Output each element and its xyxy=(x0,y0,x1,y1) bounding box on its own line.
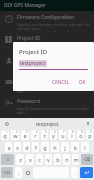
staticText: DIY GPS Manager xyxy=(4,2,46,9)
staticText: Project ID of your firmware / Telemetry … xyxy=(17,43,90,53)
staticText: g xyxy=(43,144,47,151)
button[interactable]: c xyxy=(36,154,43,165)
staticText: a xyxy=(7,144,11,151)
staticText: Authentication Type xyxy=(17,56,66,63)
button[interactable]: Password xyxy=(0,95,94,116)
staticText: 8 xyxy=(72,130,74,134)
staticText: Currently: Email account service authent… xyxy=(17,64,90,74)
button[interactable]: l xyxy=(81,142,89,152)
staticText: 1 xyxy=(6,130,8,134)
staticText: m xyxy=(73,156,79,163)
button[interactable]: Authentication Type xyxy=(0,53,94,74)
button[interactable]: Backspace xyxy=(81,154,93,165)
button[interactable]: CANCEL xyxy=(49,77,73,87)
button[interactable]: Firmware Configuration xyxy=(0,11,94,32)
staticText: w xyxy=(13,132,18,139)
button[interactable]: 1 xyxy=(0,32,94,53)
staticText: t xyxy=(44,132,46,139)
button[interactable]: h xyxy=(51,142,59,152)
button[interactable]: testproject xyxy=(36,121,59,127)
button[interactable]: t xyxy=(41,130,48,140)
staticText: p xyxy=(88,132,92,139)
button[interactable]: o xyxy=(77,130,84,140)
staticText: Specify Email to sign in Firebase servic… xyxy=(17,85,90,95)
button[interactable]: a xyxy=(5,142,12,152)
button[interactable]: r xyxy=(31,130,39,140)
staticText: 3 xyxy=(26,130,28,134)
button[interactable]: w xyxy=(11,130,19,140)
staticText: x xyxy=(29,156,32,163)
staticText: y xyxy=(52,132,55,139)
staticText: 6 xyxy=(54,130,56,134)
staticText: z xyxy=(19,156,22,163)
button[interactable]: m xyxy=(72,154,79,165)
staticText: Specify Password to use in Firebase proj… xyxy=(17,106,90,116)
staticText: CANCEL xyxy=(52,79,70,85)
staticText: 1 xyxy=(7,36,10,43)
button[interactable]: x xyxy=(26,154,34,165)
button[interactable]: OK xyxy=(76,77,89,87)
button[interactable]: Email xyxy=(0,74,94,95)
staticText: 2 xyxy=(16,130,18,134)
staticText: ⇧ xyxy=(6,157,10,162)
staticText: 9 xyxy=(81,130,83,134)
staticText: . xyxy=(74,169,76,176)
staticText: Firmware Configuration xyxy=(17,14,74,21)
button[interactable]: u xyxy=(59,130,66,140)
button[interactable]: n xyxy=(63,154,70,165)
staticText: u xyxy=(61,132,65,139)
button[interactable]: v xyxy=(45,154,52,165)
staticText: Specify your firmware build in settings.… xyxy=(17,22,90,32)
staticText: , xyxy=(18,169,20,176)
staticText: ?123 xyxy=(3,170,11,175)
button[interactable]: j xyxy=(61,142,69,152)
staticText: b xyxy=(56,156,60,163)
button[interactable]: Emoji xyxy=(24,167,31,178)
button[interactable]: z xyxy=(16,154,24,165)
staticText: Project ID xyxy=(19,48,48,56)
staticText: f xyxy=(35,144,37,151)
button[interactable]: . xyxy=(71,167,78,178)
button[interactable]: Voice input xyxy=(84,120,91,127)
staticText: o xyxy=(79,132,83,139)
staticText: i xyxy=(71,132,73,139)
button[interactable]: d xyxy=(23,142,30,152)
staticText: h xyxy=(53,144,57,151)
button[interactable]: Keyboard settings xyxy=(3,120,10,127)
button[interactable]: Shift xyxy=(1,154,14,165)
staticText: testproject xyxy=(20,60,46,67)
button[interactable]: s xyxy=(14,142,21,152)
staticText: OK xyxy=(79,79,86,85)
staticText: 4 xyxy=(36,130,38,134)
staticText: n xyxy=(65,156,69,163)
button[interactable]: g xyxy=(41,142,49,152)
button[interactable]: f xyxy=(32,142,39,152)
staticText: l xyxy=(84,144,86,151)
staticText: Password xyxy=(17,98,40,105)
button[interactable]: ?123 xyxy=(1,167,13,178)
staticText: e xyxy=(23,132,27,139)
button[interactable]: Enter xyxy=(80,167,93,178)
staticText: c xyxy=(38,156,41,163)
staticText: k xyxy=(74,144,77,151)
staticText: 7 xyxy=(63,130,65,134)
button[interactable]: , xyxy=(15,167,22,178)
staticText: d xyxy=(25,144,29,151)
staticText: ⌫ xyxy=(84,157,91,162)
staticText: j xyxy=(64,144,66,151)
button[interactable]: b xyxy=(54,154,61,165)
staticText: r xyxy=(34,132,37,139)
staticText: 5 xyxy=(45,130,47,134)
staticText: s xyxy=(16,144,19,151)
button[interactable]: k xyxy=(71,142,79,152)
button[interactable]: e xyxy=(21,130,29,140)
staticText: Project ID xyxy=(17,35,41,42)
staticText: q xyxy=(3,132,7,139)
button[interactable]: i xyxy=(68,130,75,140)
button[interactable]: p xyxy=(86,130,93,140)
staticText: 0 xyxy=(90,130,92,134)
button[interactable]: q xyxy=(1,130,9,140)
button[interactable]: y xyxy=(50,130,57,140)
